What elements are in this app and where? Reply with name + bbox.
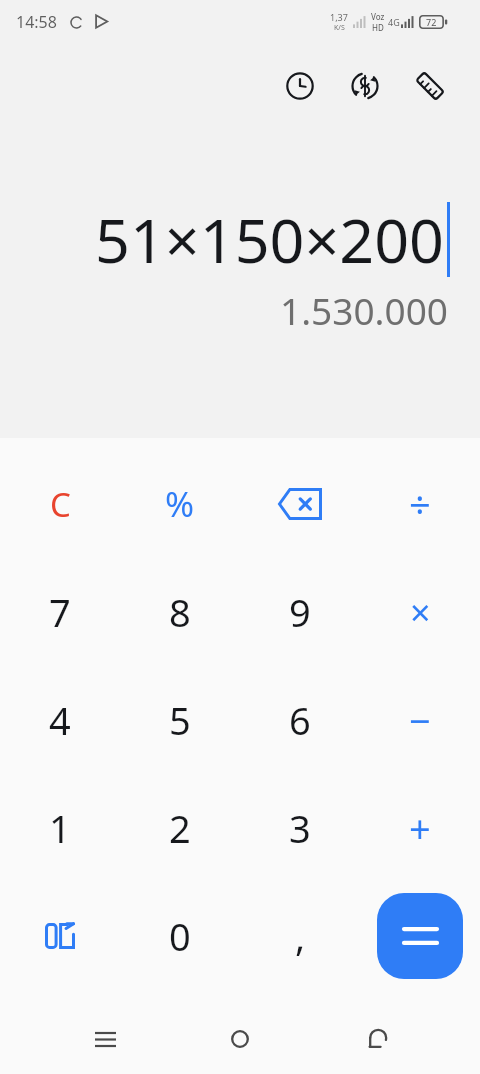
button[interactable]: +: [360, 774, 480, 882]
button[interactable]: Home: [209, 1008, 271, 1070]
staticText: ÷: [409, 478, 431, 530]
button[interactable]: 0: [120, 882, 240, 990]
staticText: ×: [410, 588, 431, 637]
button[interactable]: 6: [240, 666, 360, 774]
button[interactable]: 8: [120, 558, 240, 666]
staticText: +: [409, 802, 431, 854]
button[interactable]: 7: [0, 558, 120, 666]
staticText: −: [409, 694, 431, 746]
button[interactable]: Back: [345, 1008, 407, 1070]
staticText: 2: [169, 802, 191, 854]
button[interactable]: Backspace: [240, 450, 360, 558]
staticText: 14:58: [16, 11, 57, 33]
button[interactable]: Equals: [377, 893, 463, 979]
staticText: 1,37: [330, 11, 348, 23]
button[interactable]: ×: [360, 558, 480, 666]
button[interactable]: 1: [0, 774, 120, 882]
button[interactable]: Recent apps: [74, 1008, 136, 1070]
button[interactable]: 2: [120, 774, 240, 882]
staticText: 7: [49, 586, 71, 638]
staticText: 1: [49, 802, 71, 854]
staticText: 8: [169, 586, 191, 638]
staticText: 9: [289, 586, 311, 638]
button[interactable]: Unit converter: [404, 60, 456, 112]
button[interactable]: 9: [240, 558, 360, 666]
staticText: ,: [295, 910, 306, 962]
button[interactable]: %: [120, 450, 240, 558]
staticText: 4: [49, 694, 71, 746]
staticText: 3: [289, 802, 311, 854]
staticText: 5: [169, 694, 191, 746]
staticText: 0: [169, 910, 191, 962]
staticText: HD: [372, 22, 384, 33]
button[interactable]: Scientific mode: [0, 882, 120, 990]
button[interactable]: C: [0, 450, 120, 558]
button[interactable]: History: [274, 60, 326, 112]
staticText: C: [50, 482, 71, 527]
button[interactable]: −: [360, 666, 480, 774]
staticText: 1.530.000: [280, 285, 448, 335]
button[interactable]: 3: [240, 774, 360, 882]
button[interactable]: ÷: [360, 450, 480, 558]
staticText: 4G: [388, 16, 400, 28]
staticText: 6: [289, 694, 311, 746]
button[interactable]: Currency converter: [339, 60, 391, 112]
staticText: 72: [426, 16, 437, 28]
staticText: Voz: [371, 11, 385, 22]
staticText: K/S: [334, 23, 345, 33]
staticText: 51×150×200: [95, 198, 444, 281]
button[interactable]: ,: [240, 882, 360, 990]
button[interactable]: 5: [120, 666, 240, 774]
button[interactable]: 4: [0, 666, 120, 774]
staticText: %: [165, 480, 195, 528]
